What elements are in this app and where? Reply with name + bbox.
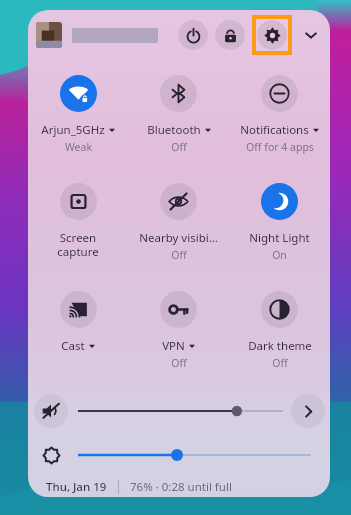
- button[interactable]: Dark theme: [229, 280, 330, 388]
- button[interactable]: VPN: [128, 280, 229, 388]
- staticText: Screen capture: [57, 230, 99, 259]
- staticText: Nearby visibi…: [139, 230, 218, 246]
- button[interactable]: 76% · 0:28 until full: [130, 479, 232, 495]
- button[interactable]: Screen capture: [28, 172, 128, 280]
- staticText: Weak: [65, 140, 92, 154]
- button[interactable]: Mute: [34, 394, 68, 428]
- button[interactable]: Notifications: [229, 64, 330, 172]
- staticText: Off: [272, 356, 288, 370]
- staticText: Arjun_5GHz: [41, 122, 105, 138]
- button[interactable]: Thu, Jan 19: [46, 479, 107, 495]
- button[interactable]: Bluetooth: [128, 64, 229, 172]
- button[interactable]: Collapse: [296, 20, 326, 50]
- button[interactable]: Night Light: [229, 172, 330, 280]
- staticText: Off for 4 apps: [246, 140, 314, 154]
- button[interactable]: Volume: [78, 399, 283, 423]
- button[interactable]: Cast: [28, 280, 128, 388]
- staticText: Off: [171, 248, 187, 262]
- staticText: VPN: [162, 338, 185, 354]
- button[interactable]: Brightness: [34, 438, 68, 472]
- staticText: Off: [171, 140, 187, 154]
- button[interactable]: More volume settings: [291, 394, 325, 428]
- staticText: Cast: [61, 338, 85, 354]
- staticText: Notifications: [240, 122, 309, 138]
- staticText: Dark theme: [248, 338, 312, 354]
- button[interactable]: Account: [36, 22, 62, 48]
- staticText: Off: [171, 356, 187, 370]
- button[interactable]: Power: [178, 20, 208, 50]
- button[interactable]: Nearby visibi…: [128, 172, 229, 280]
- button[interactable]: Brightness level: [78, 444, 311, 466]
- button[interactable]: Lock: [215, 20, 245, 50]
- button[interactable]: Arjun_5GHz: [28, 64, 128, 172]
- staticText: On: [272, 248, 287, 262]
- staticText: Night Light: [249, 230, 310, 246]
- staticText: Bluetooth: [147, 122, 201, 138]
- button[interactable]: Settings: [256, 19, 288, 51]
